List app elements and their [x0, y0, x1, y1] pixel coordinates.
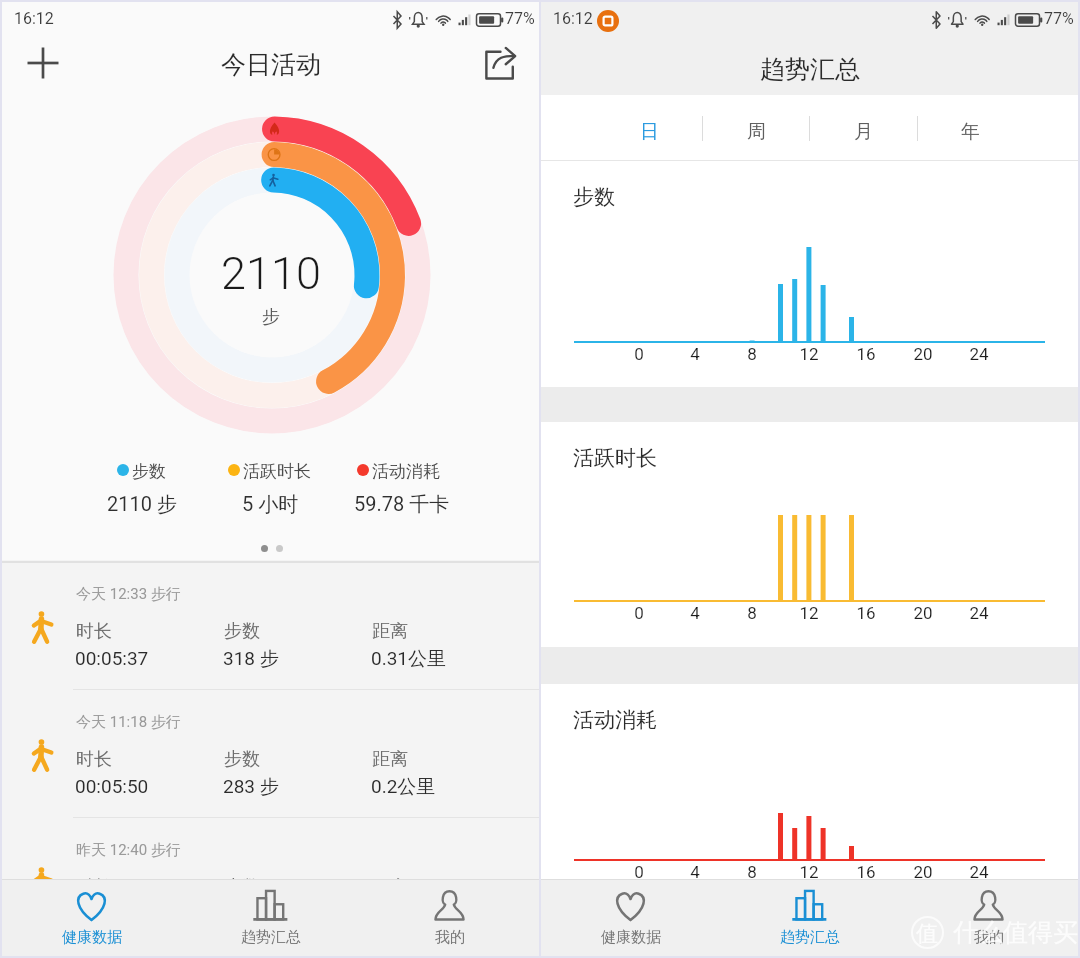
- staticText: 活动消耗: [573, 707, 657, 733]
- staticText: 24: [959, 603, 999, 623]
- staticText: 什么值得买: [953, 917, 1078, 948]
- staticText: 昨天 12:40 步行: [76, 841, 181, 860]
- staticText: 步数: [132, 461, 166, 482]
- staticText: 4: [675, 603, 715, 623]
- button[interactable]: 健康数据: [2, 880, 181, 958]
- staticText: 8: [732, 344, 772, 364]
- staticText: 趋势汇总: [241, 928, 301, 947]
- staticText: 12: [789, 344, 829, 364]
- staticText: 24: [959, 344, 999, 364]
- staticText: 2110: [221, 247, 321, 300]
- staticText: 0: [619, 862, 659, 882]
- staticText: 5 小时: [242, 492, 299, 517]
- button[interactable]: 趋势汇总: [720, 880, 899, 958]
- button[interactable]: 今天 12:33 步行: [2, 562, 539, 690]
- staticText: 趋势汇总: [780, 928, 840, 947]
- staticText: 步数: [573, 184, 615, 210]
- button[interactable]: 日: [595, 95, 703, 161]
- staticText: 日: [640, 120, 659, 144]
- staticText: 4: [675, 344, 715, 364]
- staticText: 16:12: [14, 9, 54, 28]
- staticText: 2110 步: [107, 492, 177, 517]
- staticText: 步数: [224, 620, 260, 643]
- button[interactable]: 健康数据: [541, 880, 720, 958]
- staticText: 328 步: [223, 903, 279, 927]
- staticText: 00:06:21: [75, 903, 149, 925]
- staticText: 时长: [76, 620, 112, 643]
- staticText: 20: [903, 603, 943, 623]
- staticText: 16: [846, 862, 886, 882]
- staticText: 我的: [974, 928, 1004, 947]
- staticText: 健康数据: [62, 928, 122, 947]
- staticText: 8: [732, 603, 772, 623]
- staticText: 4: [675, 862, 715, 882]
- staticText: 20: [903, 862, 943, 882]
- staticText: 月: [854, 120, 873, 144]
- staticText: 活跃时长: [243, 461, 311, 482]
- staticText: 我的: [435, 928, 465, 947]
- staticText: 0.2公里: [371, 775, 436, 799]
- staticText: 12: [789, 862, 829, 882]
- staticText: 20: [903, 344, 943, 364]
- staticText: 8: [732, 862, 772, 882]
- staticText: 周: [747, 120, 766, 144]
- button[interactable]: 今天 11:18 步行: [2, 690, 539, 818]
- staticText: 距离: [372, 748, 408, 771]
- staticText: 今天 12:33 步行: [76, 585, 181, 604]
- staticText: 年: [961, 120, 980, 144]
- staticText: 12: [789, 603, 829, 623]
- staticText: 00:05:37: [75, 647, 149, 669]
- staticText: 趋势汇总: [760, 54, 860, 85]
- staticText: 77%: [505, 9, 535, 28]
- staticText: 283 步: [223, 775, 279, 799]
- staticText: 步数: [224, 748, 260, 771]
- staticText: 今日活动: [221, 49, 321, 80]
- button[interactable]: Add: [18, 38, 68, 88]
- staticText: 59.78 千卡: [354, 492, 450, 517]
- staticText: 时长: [76, 876, 112, 899]
- staticText: 0.31公里: [371, 647, 447, 671]
- staticText: 活动消耗: [372, 461, 440, 482]
- staticText: 77%: [1044, 9, 1074, 28]
- staticText: 时长: [76, 748, 112, 771]
- button[interactable]: 月: [810, 95, 917, 161]
- staticText: 值: [916, 920, 938, 948]
- staticText: 0.32公里: [371, 903, 447, 927]
- staticText: 0: [619, 603, 659, 623]
- staticText: 16: [846, 603, 886, 623]
- button[interactable]: Share: [480, 42, 524, 86]
- button[interactable]: 我的: [899, 880, 1078, 958]
- staticText: 318 步: [223, 647, 279, 671]
- staticText: 健康数据: [601, 928, 661, 947]
- staticText: 16: [846, 344, 886, 364]
- button[interactable]: 昨天 12:40 步行: [2, 818, 539, 946]
- staticText: 距离: [372, 620, 408, 643]
- staticText: 步数: [224, 876, 260, 899]
- staticText: 24: [959, 862, 999, 882]
- button[interactable]: 趋势汇总: [181, 880, 360, 958]
- button[interactable]: 年: [917, 95, 1024, 161]
- button[interactable]: 周: [703, 95, 810, 161]
- staticText: 活跃时长: [573, 445, 657, 471]
- staticText: 今天 11:18 步行: [76, 713, 181, 732]
- staticText: 步: [262, 306, 280, 329]
- staticText: 16:12: [553, 9, 593, 28]
- staticText: 0: [619, 344, 659, 364]
- staticText: 距离: [372, 876, 408, 899]
- staticText: 00:05:50: [75, 775, 149, 797]
- button[interactable]: 我的: [360, 880, 539, 958]
